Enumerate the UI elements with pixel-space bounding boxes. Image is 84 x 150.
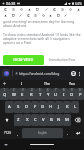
staticText: Q [3, 92, 7, 98]
button[interactable]: X [23, 114, 31, 126]
staticText: T [39, 92, 42, 98]
button[interactable]: You [59, 80, 84, 87]
button[interactable]: Symbols [0, 127, 14, 139]
staticText: I [63, 92, 65, 98]
button[interactable]: 8 [60, 88, 68, 100]
staticText: 2 [13, 88, 15, 92]
staticText: S [17, 104, 20, 110]
button[interactable]: V [39, 114, 47, 126]
button[interactable]: Hide keyboard [3, 142, 9, 148]
staticText: https://android.com/blog [19, 71, 60, 76]
button[interactable]: 5 [36, 88, 44, 100]
button[interactable]: Format option 32 [18, 13, 23, 18]
button[interactable]: Format option 8 [68, 7, 73, 12]
staticText: Introduction Post [49, 58, 76, 62]
button[interactable]: C [31, 114, 39, 126]
staticText: D [25, 104, 29, 110]
button[interactable]: Format option 34 [33, 13, 38, 18]
button[interactable]: N [55, 114, 63, 126]
staticText: B [50, 117, 53, 123]
button[interactable]: 1 [0, 88, 9, 100]
staticText: J [58, 104, 60, 110]
button[interactable]: 9 [68, 88, 76, 100]
button[interactable]: SHOW VIDEO [3, 55, 44, 65]
staticText: C [34, 117, 37, 123]
staticText: P [79, 92, 82, 98]
staticText: To show video standard Android 13 looks … [3, 32, 81, 45]
button[interactable]: Open app [2, 69, 10, 77]
staticText: I [21, 81, 23, 86]
button[interactable]: Format option 36 [48, 13, 53, 18]
button[interactable]: D [23, 101, 31, 113]
staticText: A [8, 104, 11, 110]
staticText: The [44, 81, 50, 86]
button[interactable]: . [64, 127, 71, 139]
staticText: 5 [39, 88, 41, 92]
button[interactable]: Format option 9 [76, 7, 81, 12]
button[interactable]: Z [14, 114, 23, 126]
staticText: U [54, 92, 58, 98]
button[interactable]: Format option 5 [44, 7, 49, 12]
button[interactable]: 7 [52, 88, 60, 100]
button[interactable]: Format option 0 [3, 7, 8, 12]
staticText: ?123 [4, 131, 11, 135]
button[interactable]: Format option 3 [27, 7, 32, 12]
button[interactable]: Format option 30 [3, 13, 8, 18]
button[interactable]: , [14, 127, 21, 139]
button[interactable]: S [14, 101, 23, 113]
button[interactable]: Keyboard tools [0, 80, 9, 87]
staticText: 9 [71, 88, 73, 92]
button[interactable]: Enter [71, 127, 84, 139]
button[interactable]: Format option 33 [26, 13, 31, 18]
staticText: W [12, 92, 16, 98]
button[interactable]: M [63, 114, 71, 126]
button[interactable]: Format option 7 [60, 7, 65, 12]
staticText: G [41, 104, 45, 110]
staticText: K [66, 104, 69, 110]
button[interactable]: K [63, 101, 71, 113]
button[interactable]: Format option 37 [56, 13, 61, 18]
staticText: 0 [79, 88, 81, 92]
button[interactable]: 3 [18, 88, 27, 100]
button[interactable]: Format option 1 [11, 7, 16, 12]
staticText: 6 [47, 88, 49, 92]
button[interactable]: Format option 38 [63, 13, 68, 18]
button[interactable]: F [31, 101, 39, 113]
button[interactable]: A [5, 101, 14, 113]
staticText: V [42, 117, 45, 123]
staticText: Y [47, 92, 50, 98]
button[interactable]: J [55, 101, 63, 113]
staticText: . [67, 131, 69, 136]
staticText: 04:38 [6, 1, 16, 6]
staticText: 7 [55, 88, 57, 92]
button[interactable]: Backspace [71, 114, 84, 126]
button[interactable]: L [71, 101, 79, 113]
button[interactable]: H [47, 101, 55, 113]
staticText: N [57, 117, 61, 123]
button[interactable]: 2 [9, 88, 18, 100]
button[interactable]: Format option 35 [41, 13, 46, 18]
button[interactable]: 6 [44, 88, 52, 100]
button[interactable]: Space [22, 128, 63, 138]
button[interactable]: More options [77, 71, 82, 76]
button[interactable]: B [47, 114, 55, 126]
staticText: H [49, 104, 53, 110]
button[interactable]: 4 [27, 88, 36, 100]
button[interactable]: I [9, 80, 34, 87]
button[interactable]: Shift [0, 114, 14, 126]
button[interactable]: Tab switcher [70, 70, 76, 76]
button[interactable]: The [34, 80, 59, 87]
staticText: 3 [22, 88, 24, 92]
staticText: M [65, 117, 69, 123]
staticText: 1 [4, 88, 6, 92]
button[interactable]: 0 [76, 88, 84, 100]
button[interactable]: Format option 31 [11, 13, 16, 18]
staticText: X [26, 117, 29, 123]
staticText: , [17, 131, 19, 136]
staticText: O [70, 92, 74, 98]
button[interactable]: Format option 2 [19, 7, 24, 12]
button[interactable]: Format option 6 [52, 7, 57, 12]
button[interactable]: G [39, 101, 47, 113]
staticText: You [69, 81, 75, 86]
button[interactable]: Format option 4 [35, 7, 40, 12]
